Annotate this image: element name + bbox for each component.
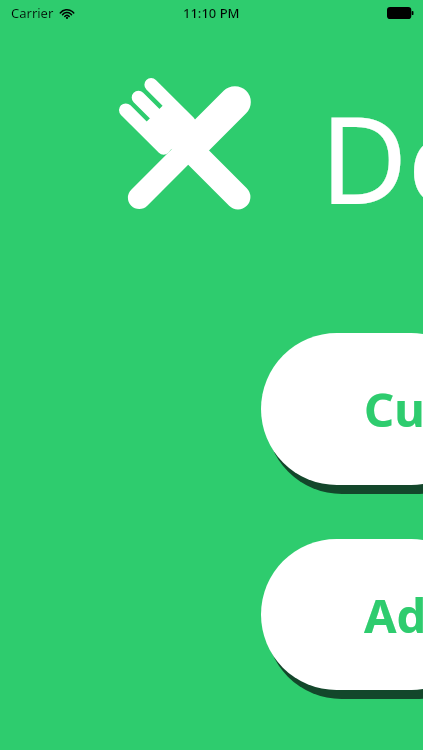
staticText: Carrier: [11, 4, 54, 22]
staticText: 11:10 PM: [183, 4, 240, 22]
other: Restaurant logo: [103, 62, 275, 234]
staticText: Customer: [364, 377, 423, 441]
button[interactable]: Customer: [261, 333, 423, 485]
staticText: Delivery: [320, 76, 423, 239]
button[interactable]: Admin: [261, 539, 423, 690]
staticText: Admin: [364, 583, 423, 647]
